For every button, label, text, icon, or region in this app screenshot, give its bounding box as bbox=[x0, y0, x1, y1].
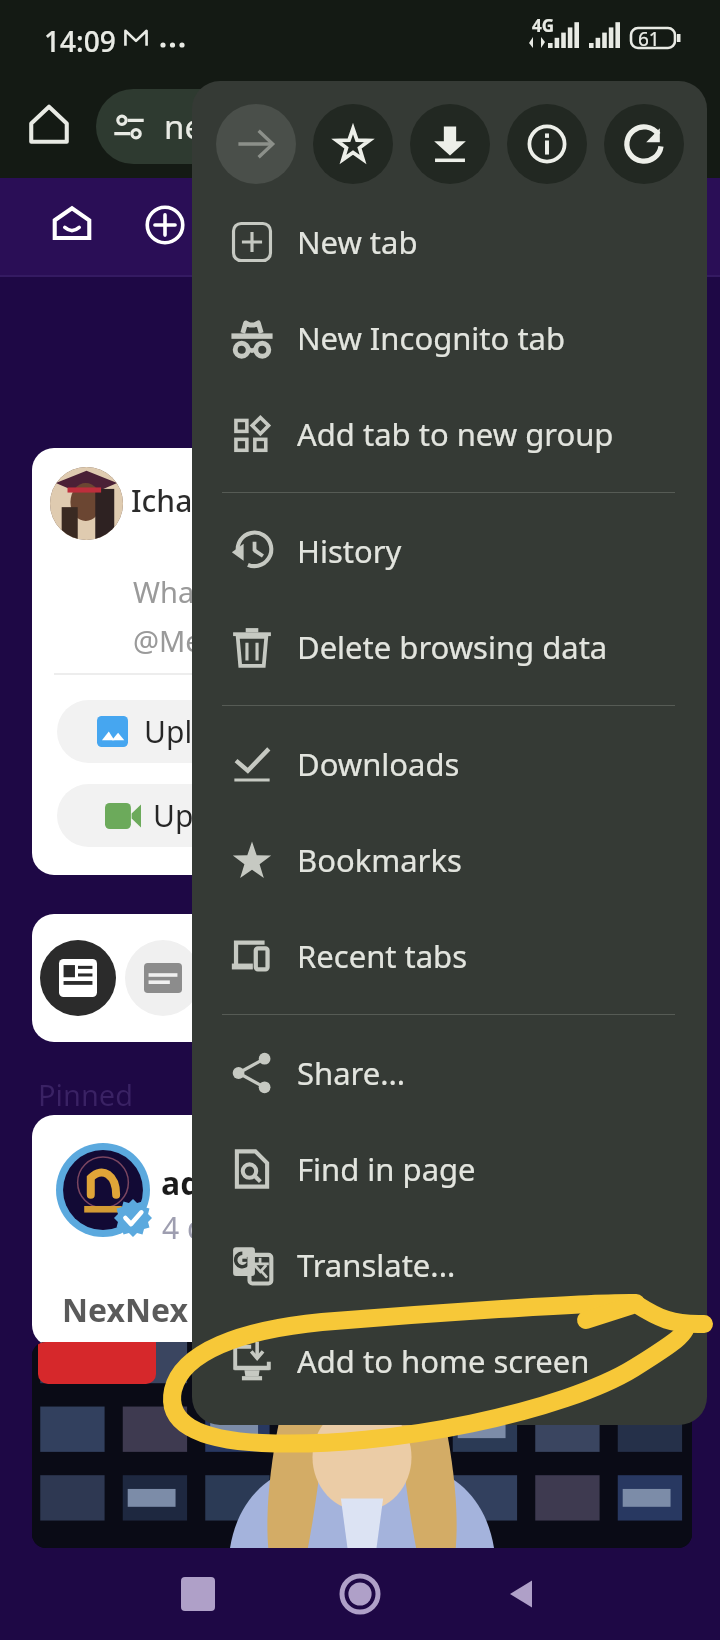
button[interactable]: Add tab to new group bbox=[192, 386, 707, 482]
button[interactable]: Upload Video bbox=[57, 784, 617, 847]
staticText: New Incognito tab bbox=[297, 317, 566, 359]
button[interactable]: Home bbox=[338, 1572, 382, 1616]
button[interactable]: Downloads bbox=[192, 716, 707, 812]
button[interactable]: adm bbox=[32, 1115, 688, 1347]
button[interactable]: info bbox=[507, 104, 587, 184]
button[interactable]: Recents bbox=[176, 1572, 220, 1616]
staticText: Upload Video bbox=[153, 795, 342, 836]
staticText: What's on your mind? bbox=[133, 572, 429, 611]
staticText: Icha bbox=[131, 480, 193, 521]
staticText: Bookmarks bbox=[297, 839, 462, 881]
staticText: Translate... bbox=[297, 1244, 456, 1286]
button[interactable]: History bbox=[192, 503, 707, 599]
staticText: adm bbox=[161, 1161, 232, 1205]
button[interactable]: Back bbox=[500, 1572, 544, 1616]
staticText: Share... bbox=[297, 1052, 406, 1094]
button[interactable]: Upload Photo bbox=[57, 700, 617, 763]
staticText: NexNex bbox=[62, 1288, 188, 1332]
button[interactable]: Bookmarks bbox=[192, 812, 707, 908]
staticText: 4 days ago bbox=[162, 1207, 314, 1248]
staticText: Delete browsing data bbox=[297, 626, 608, 668]
staticText: @Mention Friends bbox=[133, 621, 382, 660]
staticText: news.google.com bbox=[164, 104, 437, 149]
staticText: Add to home screen bbox=[297, 1340, 590, 1382]
button[interactable]: Feed bbox=[32, 914, 688, 1042]
button[interactable]: reload bbox=[604, 104, 684, 184]
button[interactable]: Home bbox=[48, 201, 96, 249]
staticText: Pinned bbox=[38, 1075, 134, 1114]
staticText: History bbox=[297, 530, 402, 572]
button[interactable]: Translate... bbox=[192, 1217, 707, 1313]
staticText: Recent tabs bbox=[297, 935, 468, 977]
button[interactable]: Find in page bbox=[192, 1121, 707, 1217]
button[interactable]: Delete browsing data bbox=[192, 599, 707, 695]
button[interactable]: forward bbox=[216, 104, 296, 184]
staticText: Downloads bbox=[297, 743, 460, 785]
staticText: 61 bbox=[638, 26, 660, 52]
button[interactable]: New tab bbox=[192, 194, 707, 290]
button[interactable]: star bbox=[313, 104, 393, 184]
button[interactable]: New Incognito tab bbox=[192, 290, 707, 386]
button[interactable]: news.google.com bbox=[96, 89, 636, 164]
button[interactable]: Share... bbox=[192, 1025, 707, 1121]
staticText: Upload Photo bbox=[144, 711, 338, 752]
button[interactable]: Add bbox=[141, 201, 189, 249]
button[interactable] bbox=[32, 1342, 692, 1548]
button[interactable]: Articles bbox=[125, 940, 201, 1016]
button[interactable]: Icha bbox=[32, 448, 688, 875]
button[interactable]: download bbox=[410, 104, 490, 184]
staticText: Add tab to new group bbox=[297, 413, 614, 455]
staticText: 4G bbox=[532, 14, 555, 37]
button[interactable]: Recent tabs bbox=[192, 908, 707, 1004]
staticText: New tab bbox=[297, 221, 418, 263]
button[interactable]: Add to home screen bbox=[192, 1313, 707, 1409]
staticText: Find in page bbox=[297, 1148, 476, 1190]
button[interactable]: Chrome home bbox=[25, 100, 73, 148]
button[interactable]: Feed bbox=[40, 940, 116, 1016]
staticText: 14:09 bbox=[44, 22, 116, 60]
